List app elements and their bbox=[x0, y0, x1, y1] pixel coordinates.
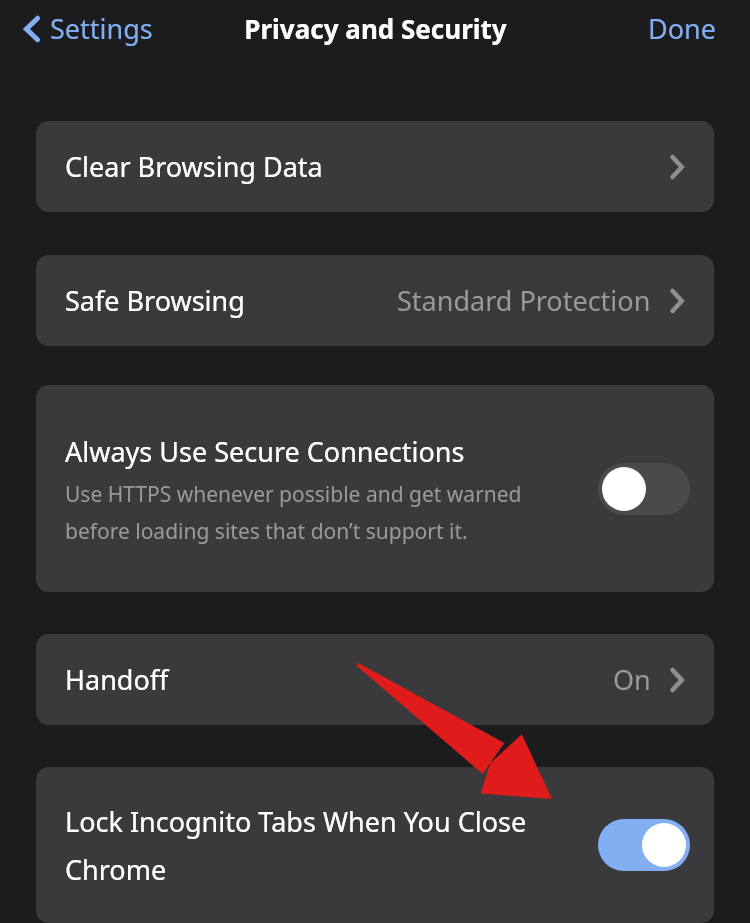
other: Open bbox=[669, 666, 685, 694]
staticText: Standard Protection bbox=[397, 282, 651, 319]
other: Open bbox=[669, 287, 685, 315]
button[interactable]: Settings bbox=[16, 4, 159, 53]
staticText: Always Use Secure Connections bbox=[65, 433, 465, 470]
staticText: On bbox=[613, 661, 651, 698]
staticText: Done bbox=[648, 10, 716, 47]
staticText: Safe Browsing bbox=[65, 282, 245, 319]
button[interactable]: Always Use Secure Connections bbox=[36, 385, 714, 592]
button[interactable]: Safe Browsing bbox=[36, 255, 714, 346]
button[interactable]: On bbox=[598, 819, 690, 871]
other: Open bbox=[669, 153, 685, 181]
staticText: Lock Incognito Tabs When You Close Chrom… bbox=[65, 803, 586, 888]
button[interactable]: Handoff bbox=[36, 634, 714, 725]
staticText: Settings bbox=[50, 10, 153, 47]
button[interactable]: Clear Browsing Data bbox=[36, 121, 714, 212]
button[interactable]: Lock Incognito Tabs When You Close Chrom… bbox=[36, 767, 714, 923]
staticText: Clear Browsing Data bbox=[65, 148, 323, 185]
staticText: Privacy and Security bbox=[244, 11, 507, 46]
button[interactable]: Done bbox=[642, 4, 722, 53]
button[interactable]: Off bbox=[598, 463, 690, 515]
staticText: Handoff bbox=[65, 661, 169, 698]
staticText: Use HTTPS whenever possible and get warn… bbox=[65, 480, 586, 545]
